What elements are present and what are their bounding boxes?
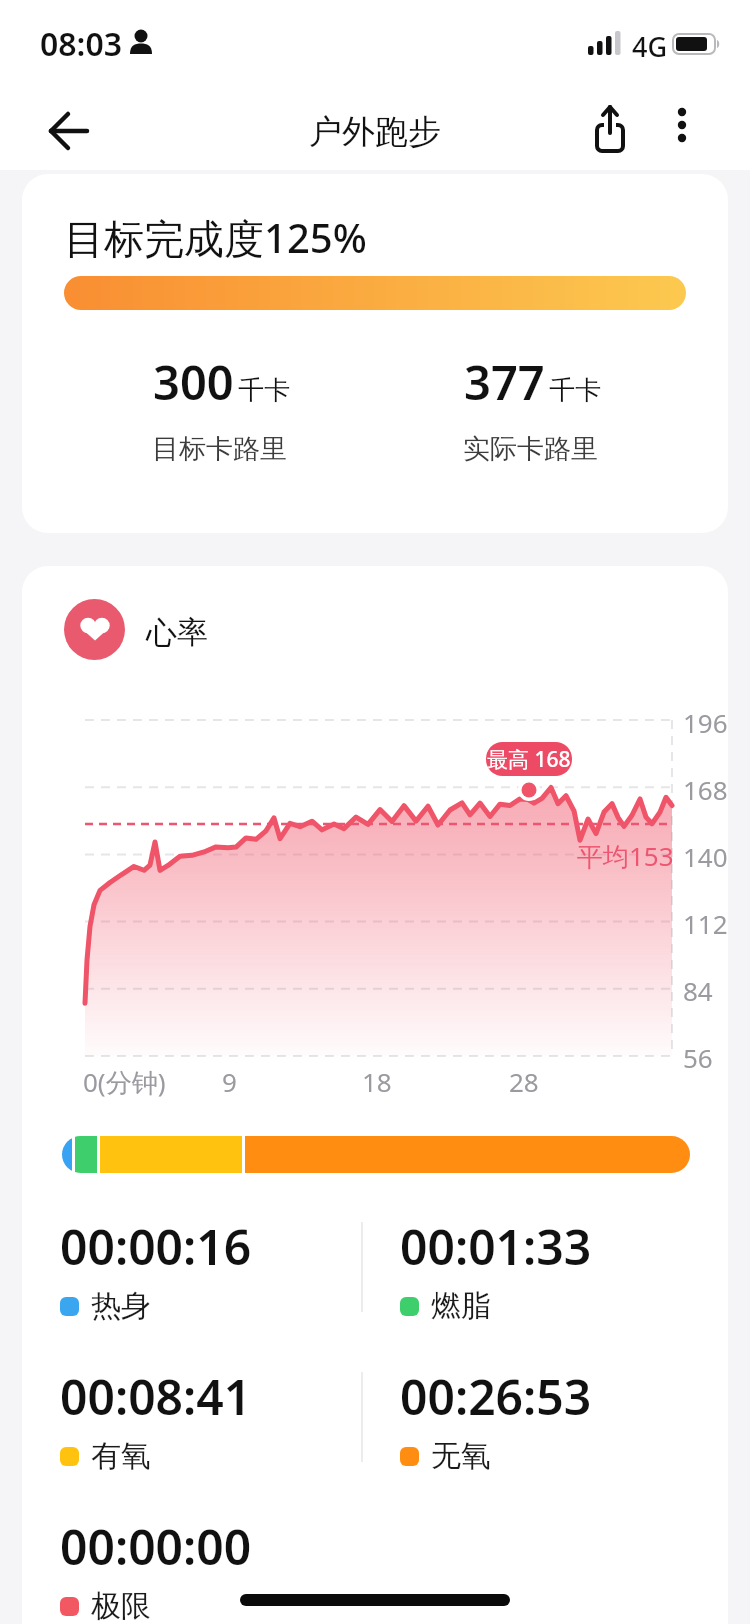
staticText: 燃脂 [431, 1287, 491, 1325]
staticText: 00:26:53 [400, 1364, 592, 1429]
button[interactable] [588, 100, 632, 158]
staticText: 0(分钟) [83, 1064, 166, 1100]
staticText: 极限 [91, 1587, 151, 1624]
staticText: 最高 168 [487, 745, 571, 774]
staticText: 目标完成度125% [64, 210, 367, 265]
staticText: 4G [632, 28, 668, 65]
staticText: 心率 [146, 613, 208, 652]
staticText: 00:00:00 [60, 1514, 252, 1579]
staticText: 热身 [91, 1287, 151, 1325]
staticText: 140 [683, 839, 728, 874]
staticText: 00:01:33 [400, 1214, 592, 1279]
staticText: 377 [464, 350, 545, 414]
button[interactable] [662, 104, 702, 156]
staticText: 无氧 [431, 1437, 491, 1475]
staticText: 08:03 [40, 22, 123, 66]
staticText: 00:00:16 [60, 1214, 252, 1279]
staticText: 196 [683, 705, 728, 740]
button[interactable] [44, 108, 92, 154]
staticText: 9 [222, 1064, 237, 1099]
staticText: 千卡 [238, 374, 290, 407]
staticText: 300 [153, 350, 234, 414]
staticText: 112 [683, 906, 728, 941]
staticText: 户外跑步 [309, 111, 441, 153]
staticText: 28 [509, 1064, 539, 1099]
staticText: 千卡 [549, 374, 601, 407]
staticText: 目标卡路里 [152, 432, 287, 466]
staticText: 168 [683, 772, 728, 807]
staticText: 84 [683, 973, 713, 1008]
staticText: 56 [683, 1040, 713, 1075]
staticText: 平均153 [577, 838, 674, 874]
staticText: 有氧 [91, 1437, 151, 1475]
staticText: 实际卡路里 [463, 432, 598, 466]
staticText: 18 [362, 1064, 392, 1099]
staticText: 00:08:41 [60, 1364, 252, 1429]
